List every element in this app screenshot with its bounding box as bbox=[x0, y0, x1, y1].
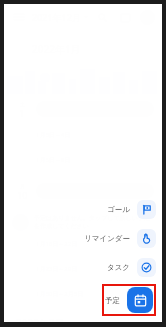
button[interactable] bbox=[4, 4, 162, 322]
staticText: 予定はありません。タップして新しい予定を作成してください bbox=[34, 214, 154, 230]
staticText: ゴール bbox=[107, 205, 130, 214]
staticText: 1月16日～22日 bbox=[36, 240, 154, 248]
staticText: 1月23日～29日 bbox=[36, 265, 154, 273]
staticText: タスク bbox=[106, 263, 130, 272]
button[interactable]: 1月16日～22日 bbox=[12, 240, 154, 259]
button[interactable]: 1月23日～29日 bbox=[12, 265, 154, 284]
button[interactable]: 1月30日～2月5日 bbox=[12, 290, 154, 309]
button[interactable]: Create event bbox=[105, 287, 153, 313]
button[interactable]: Create goal bbox=[107, 198, 156, 221]
button[interactable]: Create task bbox=[106, 256, 156, 279]
staticText: 1月30日～2月5日 bbox=[36, 290, 154, 298]
staticText: リマインダー bbox=[84, 234, 130, 243]
button[interactable]: Create reminder bbox=[84, 227, 156, 250]
staticText: 予定 bbox=[105, 296, 120, 305]
